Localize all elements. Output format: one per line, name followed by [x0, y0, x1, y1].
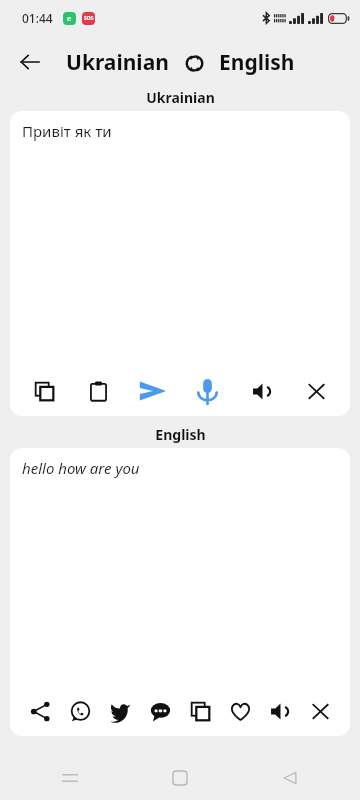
- button[interactable]: Home: [160, 758, 200, 798]
- button[interactable]: Translate: [135, 373, 171, 409]
- button[interactable]: Copy: [26, 373, 62, 409]
- button[interactable]: Speak: [262, 693, 298, 729]
- button[interactable]: Speak: [244, 373, 280, 409]
- button[interactable]: Voice input: [189, 373, 225, 409]
- button[interactable]: Paste: [80, 373, 116, 409]
- staticText: e: [67, 14, 72, 24]
- button[interactable]: WhatsApp: [62, 693, 98, 729]
- button[interactable]: Twitter: [102, 693, 138, 729]
- button[interactable]: Swap languages: [179, 48, 209, 78]
- button[interactable]: English: [217, 46, 297, 79]
- staticText: English: [219, 48, 295, 77]
- staticText: English: [155, 425, 206, 444]
- button[interactable]: Favourite: [222, 693, 258, 729]
- staticText: Ukrainian: [146, 88, 215, 107]
- button[interactable]: Close: [302, 693, 338, 729]
- button[interactable]: Recents: [50, 758, 90, 798]
- staticText: Привіт як ти: [22, 121, 112, 141]
- staticText: hello how are you: [22, 458, 140, 478]
- button[interactable]: SMS: [142, 693, 178, 729]
- staticText: 01:44: [22, 10, 53, 26]
- button[interactable]: Back: [8, 40, 52, 84]
- button[interactable]: Share: [22, 693, 58, 729]
- staticText: SOS: [84, 15, 94, 22]
- button[interactable]: Back: [270, 758, 310, 798]
- button[interactable]: Copy: [182, 693, 218, 729]
- button[interactable]: Ukrainian: [64, 46, 171, 79]
- button[interactable]: Clear: [298, 373, 334, 409]
- staticText: Ukrainian: [66, 48, 169, 77]
